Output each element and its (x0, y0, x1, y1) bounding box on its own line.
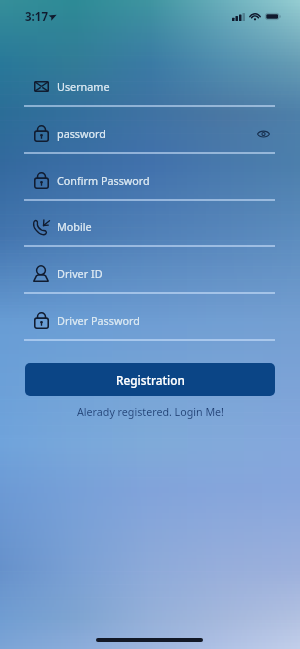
staticText: Driver ID (57, 266, 103, 281)
staticText: Alerady registered. Login Me! (77, 405, 224, 420)
button[interactable]: password (24, 121, 275, 145)
button[interactable]: Username (24, 74, 275, 98)
button[interactable]: Show password (257, 131, 270, 137)
staticText: Mobile (57, 219, 92, 234)
button[interactable]: Mobile (24, 214, 275, 238)
button[interactable]: Confirm Password (24, 168, 275, 192)
staticText: password (57, 126, 106, 141)
staticText: Driver Password (57, 313, 140, 328)
button[interactable]: Alerady registered. Login Me! (0, 403, 300, 421)
button[interactable]: Driver ID (24, 261, 275, 285)
staticText: Registration (116, 372, 185, 388)
staticText: Username (57, 79, 110, 94)
button[interactable]: Driver Password (24, 308, 275, 332)
button[interactable]: Registration (25, 363, 275, 396)
staticText: Confirm Password (57, 173, 150, 188)
staticText: 3:17 (25, 9, 48, 25)
